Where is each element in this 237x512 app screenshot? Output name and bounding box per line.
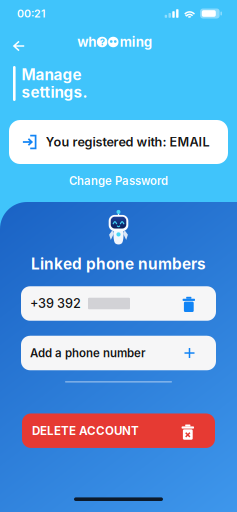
staticText: ? (100, 36, 105, 48)
button[interactable]: +39 392 (21, 286, 216, 321)
staticText: Linked phone numbers (31, 255, 206, 273)
staticText: settings. (22, 83, 88, 101)
button[interactable]: Back (5, 33, 33, 59)
staticText: Manage (22, 66, 82, 84)
staticText: ming (120, 34, 152, 50)
staticText: Change Password (69, 174, 168, 188)
staticText: +39 392 (30, 296, 81, 311)
button[interactable]: Add a phone number (21, 336, 216, 370)
staticText: DELETE ACCOUNT (32, 424, 139, 438)
staticText: 00:21 (17, 7, 46, 20)
staticText: You registered with: EMAIL (45, 134, 209, 150)
button[interactable]: Change Password (57, 169, 180, 193)
button[interactable]: You registered with: EMAIL (9, 120, 228, 164)
staticText: wh (77, 34, 96, 50)
button[interactable]: DELETE ACCOUNT (22, 413, 215, 448)
staticText: Add a phone number (30, 346, 146, 360)
